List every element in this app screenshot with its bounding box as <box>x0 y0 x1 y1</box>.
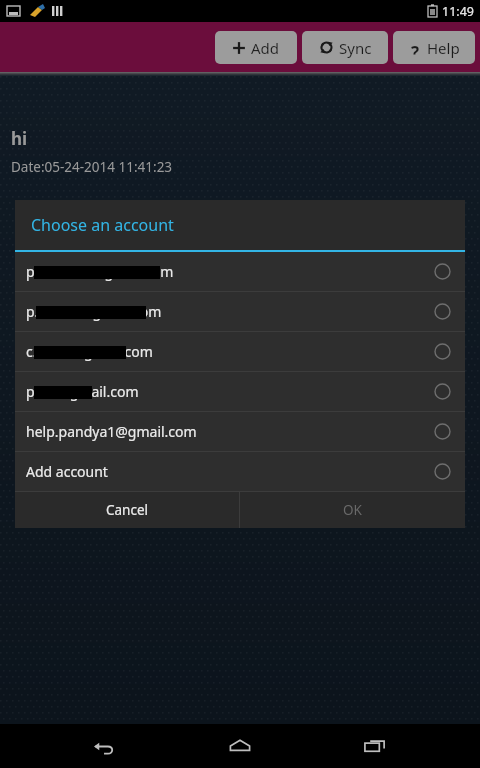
button[interactable]: p..........a@gmail.com <box>15 292 465 331</box>
staticText: ? <box>411 41 420 55</box>
button[interactable]: Recent apps <box>345 724 405 768</box>
staticText: help.pandya1@gmail.com <box>26 422 197 441</box>
staticText: p...........12@gmail.com <box>26 262 174 281</box>
button[interactable]: ? <box>393 31 475 64</box>
button[interactable]: Cancel <box>15 492 239 528</box>
staticText: Cancel <box>106 501 149 519</box>
staticText: OK <box>343 501 362 519</box>
button[interactable]: OK <box>240 492 465 528</box>
staticText: hi <box>11 127 28 150</box>
button[interactable]: Back <box>75 724 135 768</box>
button[interactable]: Home <box>210 724 270 768</box>
staticText: Sync <box>339 38 372 58</box>
staticText: p..........a@gmail.com <box>26 302 162 321</box>
button[interactable]: help.pandya1@gmail.com <box>15 412 465 451</box>
staticText: Add <box>251 38 280 58</box>
staticText: Add account <box>26 462 108 481</box>
staticText: Choose an account <box>31 214 174 236</box>
button[interactable]: c........d@gmail.com <box>15 332 465 371</box>
staticText: c........d@gmail.com <box>26 342 153 361</box>
staticText: 11:49 <box>442 3 474 20</box>
staticText: Date:05-24-2014 11:41:23 <box>11 158 173 176</box>
button[interactable]: Add <box>215 31 297 64</box>
button[interactable]: p......@gmail.com <box>15 372 465 411</box>
button[interactable]: Add account <box>15 452 465 491</box>
button[interactable]: Sync <box>302 31 388 64</box>
staticText: p......@gmail.com <box>26 382 139 401</box>
button[interactable]: p...........12@gmail.com <box>15 252 465 291</box>
staticText: Help <box>427 38 460 58</box>
